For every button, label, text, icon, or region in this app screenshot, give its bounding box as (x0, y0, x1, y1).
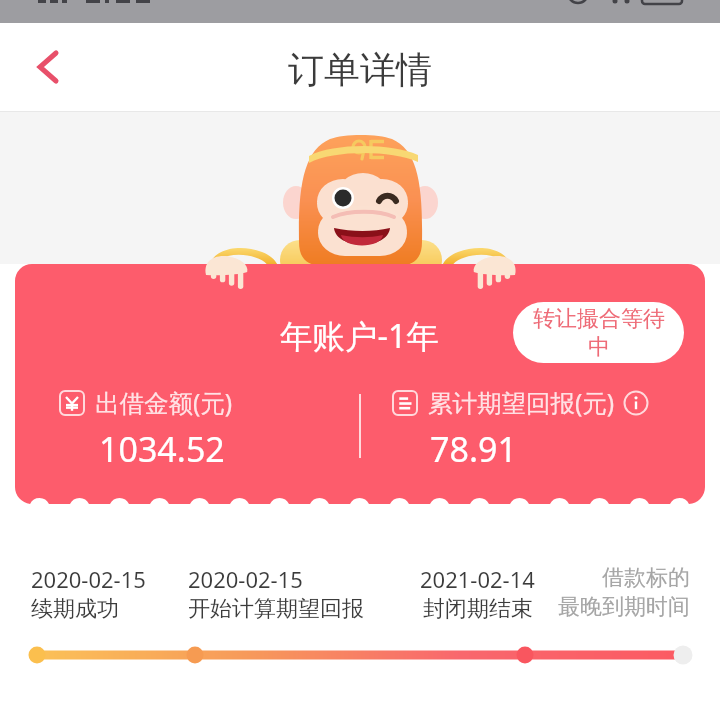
staticText: 借款标的 (602, 564, 690, 592)
staticText: 2020-02-15 (188, 564, 303, 594)
staticText: 累计期望回报(元) (428, 386, 615, 419)
staticText: 最晚到期时间 (558, 593, 690, 621)
staticText: 开始计算期望回报 (188, 595, 364, 623)
staticText: 1034.52 (99, 426, 225, 472)
staticText: 封闭期结束 (423, 595, 533, 623)
button[interactable]: 转让撮合等待中 (513, 302, 684, 363)
staticText: 出借金额(元) (95, 386, 233, 419)
staticText: 转让撮合等待中 (529, 305, 669, 360)
button[interactable]: Info (623, 390, 649, 416)
button[interactable]: Back (20, 39, 76, 95)
staticText: 2021-02-14 (420, 564, 535, 594)
staticText: 年账户-1年 (280, 313, 440, 357)
staticText: 订单详情 (288, 47, 432, 92)
staticText: 78.91 (430, 426, 517, 472)
staticText: 续期成功 (31, 595, 119, 623)
staticText: 2020-02-15 (31, 564, 146, 594)
